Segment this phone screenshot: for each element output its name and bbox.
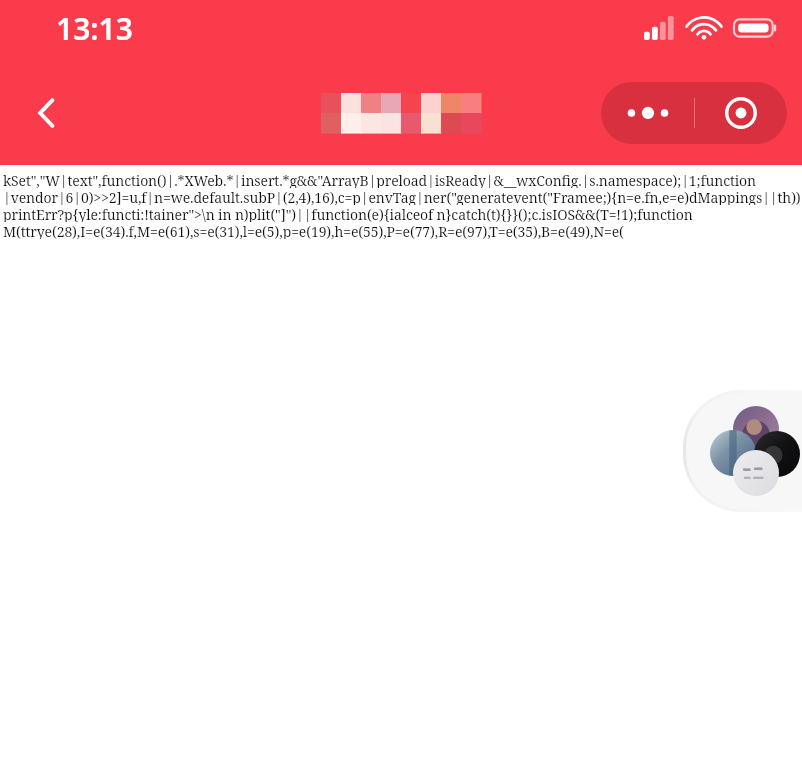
button[interactable]: More options <box>601 82 694 144</box>
button[interactable]: Close mini program <box>695 82 787 144</box>
staticText: 13:13 <box>56 8 133 49</box>
staticText: printErr?p{yle:functi:!tainer">\n in n)p… <box>3 205 800 222</box>
staticText: |vendor|6|0)>>2]=u,f|n=we.default.subP|(… <box>3 188 800 205</box>
staticText: kSet","W|text",function()|.*XWeb.*|inser… <box>3 171 800 188</box>
button[interactable]: Back <box>14 80 80 146</box>
button[interactable]: Group chat avatars <box>683 390 802 512</box>
staticText: M(ttrye(28),I=e(34).f,M=e(61),s=e(31),l=… <box>3 222 800 239</box>
